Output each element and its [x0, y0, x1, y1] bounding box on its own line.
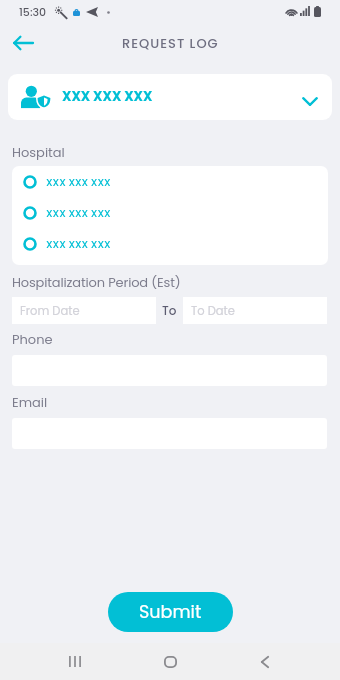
button[interactable]: XXX XXX XXX — [12, 197, 328, 228]
button[interactable]: Recents — [54, 643, 94, 680]
button[interactable]: Back — [245, 643, 285, 680]
button[interactable]: Submit — [108, 592, 233, 632]
staticText: Hospital — [12, 143, 65, 161]
staticText: 15:30 — [19, 4, 47, 19]
staticText: Email — [12, 393, 48, 411]
button[interactable]: Home — [150, 643, 190, 680]
staticText: REQUEST LOG — [122, 34, 219, 52]
staticText: XXX XXX XXX — [46, 237, 111, 251]
staticText: To Date — [191, 303, 235, 319]
staticText: Submit — [139, 600, 202, 625]
staticText: From Date — [20, 303, 80, 319]
button[interactable]: From Date — [12, 297, 156, 324]
staticText: Hospitalization Period (Est) — [12, 273, 181, 291]
staticText: XXX XXX XXX — [46, 175, 111, 189]
button[interactable]: XXX XXX XXX — [8, 74, 332, 120]
button[interactable]: XXX XXX XXX — [12, 228, 328, 259]
staticText: XXX XXX XXX — [62, 87, 153, 105]
staticText: To — [162, 302, 177, 319]
staticText: XXX XXX XXX — [46, 206, 111, 220]
staticText: Phone — [12, 330, 53, 348]
button[interactable]: To Date — [183, 297, 327, 324]
button[interactable]: Back — [6, 26, 40, 60]
button[interactable]: XXX XXX XXX — [12, 166, 328, 197]
